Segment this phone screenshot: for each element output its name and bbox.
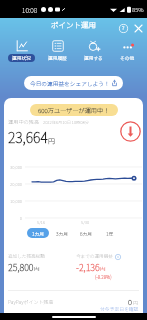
staticText: ? — [122, 24, 125, 32]
button[interactable]: 運用状況 — [4, 40, 38, 64]
button[interactable]: 引き出す — [120, 121, 141, 142]
staticText: 円 — [100, 265, 106, 273]
button[interactable]: 追加した残高総額 — [8, 253, 76, 274]
staticText: 3カ月 — [56, 230, 69, 237]
staticText: 23,664 — [8, 127, 48, 147]
button[interactable]: 6カ月 — [75, 228, 97, 238]
other: 詳細 — [115, 254, 121, 260]
staticText: 85% — [132, 5, 144, 14]
staticText: 1カ月 — [32, 230, 45, 237]
staticText: 20,000 — [10, 181, 22, 187]
staticText: 今日の運用益をシェアしよう！ — [30, 79, 110, 87]
button[interactable]: 運用する — [76, 40, 110, 64]
staticText: PayPayポイント残高 — [8, 298, 54, 305]
button[interactable]: Close — [132, 22, 144, 34]
staticText: 5/30 — [81, 219, 90, 225]
staticText: 円 — [34, 265, 40, 273]
staticText: 付与予定日を確認 — [100, 305, 139, 312]
staticText: 運用状況 — [12, 55, 31, 62]
staticText: 0 — [128, 296, 132, 307]
staticText: 25,800 — [8, 261, 34, 274]
button[interactable]: Help — [117, 22, 129, 34]
staticText: (-8.28%) — [95, 274, 112, 281]
staticText: 6カ月 — [80, 230, 93, 237]
button[interactable]: 今までの運用損益 — [76, 253, 143, 281]
button[interactable]: 1年 — [99, 228, 121, 238]
button[interactable]: その他 — [110, 40, 144, 64]
staticText: その他 — [120, 55, 135, 62]
button[interactable]: 付与予定日を確認 — [100, 305, 139, 312]
staticText: 運用履歴 — [48, 55, 67, 62]
staticText: 600万ユーザーが運用中！ — [38, 106, 110, 115]
button[interactable]: 600万ユーザーが運用中！ — [30, 104, 118, 116]
button[interactable]: 運用履歴 — [40, 40, 74, 64]
staticText: 運用する — [84, 55, 103, 62]
staticText: 1年 — [106, 230, 114, 237]
button[interactable]: 今日の運用益をシェアしよう！ — [24, 76, 123, 90]
staticText: 今までの運用損益 — [76, 253, 113, 260]
button[interactable]: 1カ月 — [27, 228, 49, 238]
staticText: 円 — [48, 136, 55, 146]
staticText: 30,000 — [10, 164, 22, 170]
staticText: -2,136 — [76, 261, 100, 274]
staticText: 0 — [19, 215, 22, 221]
staticText: 運用中の残高 — [8, 118, 40, 126]
staticText: 10:08 — [22, 5, 38, 14]
staticText: 追加した残高総額 — [8, 253, 45, 260]
staticText: 円 — [133, 299, 139, 306]
staticText: 2022年6月10日 10時08分 — [43, 119, 89, 125]
staticText: 5/16 — [37, 219, 46, 225]
button[interactable]: 3カ月 — [51, 228, 73, 238]
staticText: 10,000 — [10, 198, 22, 204]
staticText: ポイント運用 — [51, 19, 96, 30]
